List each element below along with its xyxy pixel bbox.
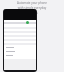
button[interactable] [4, 33, 36, 37]
button[interactable] [4, 25, 36, 29]
staticText: Automate your phone with simple everyday… [17, 1, 47, 14]
button[interactable] [4, 37, 36, 41]
button[interactable]: Profile [4, 21, 36, 25]
button[interactable] [4, 9, 36, 20]
button[interactable] [4, 41, 36, 45]
button[interactable]: Profile [26, 21, 29, 24]
button[interactable] [4, 29, 36, 33]
